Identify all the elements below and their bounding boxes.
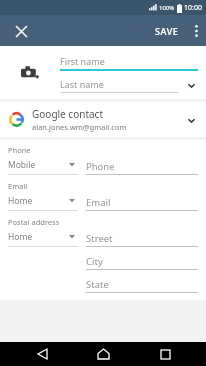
button[interactable]: Google contact <box>0 102 206 137</box>
staticText: City <box>86 255 103 268</box>
button[interactable]: SAVE <box>148 19 186 43</box>
staticText: Email <box>86 196 111 209</box>
button[interactable]: Street <box>86 231 198 247</box>
button[interactable]: First name <box>60 52 198 71</box>
staticText: 100% <box>159 4 175 12</box>
staticText: Home <box>8 231 33 243</box>
button[interactable]: More options <box>186 18 206 44</box>
staticText: First name <box>60 55 105 67</box>
button[interactable]: Phone <box>86 159 198 175</box>
button[interactable]: Close <box>8 18 34 44</box>
button[interactable]: Back <box>22 342 62 366</box>
button[interactable]: Home <box>83 342 123 366</box>
button[interactable]: Last name <box>60 76 198 93</box>
button[interactable]: Add photo <box>8 52 52 92</box>
other: Expand name fields <box>184 78 198 92</box>
staticText: Email <box>8 181 28 191</box>
staticText: SAVE <box>155 25 179 37</box>
staticText: Mobile <box>8 159 36 171</box>
staticText: Google contact <box>32 107 104 121</box>
staticText: State <box>86 278 109 291</box>
staticText: Home <box>8 195 33 207</box>
button[interactable]: State <box>86 277 198 293</box>
staticText: Street <box>86 232 113 245</box>
button[interactable]: Recent apps <box>145 342 185 366</box>
staticText: Phone <box>86 160 115 173</box>
staticText: Phone <box>8 145 31 155</box>
staticText: alan.jones.wm@gmail.com <box>32 122 127 132</box>
button[interactable]: Email <box>86 195 198 211</box>
button[interactable]: Home <box>8 195 78 211</box>
button[interactable]: City <box>86 254 198 270</box>
staticText: 10:00 <box>184 3 202 13</box>
button[interactable]: Home <box>8 231 78 247</box>
staticText: Postal address <box>8 217 60 227</box>
staticText: Last name <box>60 78 104 90</box>
button[interactable]: Mobile <box>8 159 78 175</box>
